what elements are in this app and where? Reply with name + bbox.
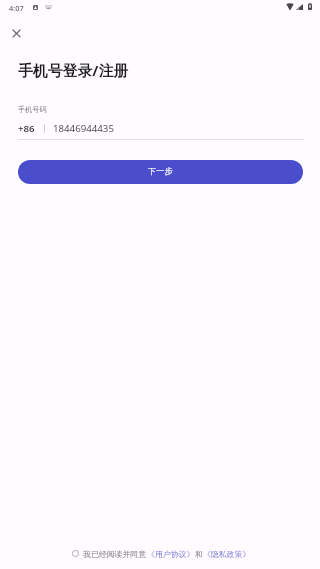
- staticText: 手机号码: [18, 105, 47, 114]
- staticText: 下一步: [148, 166, 173, 176]
- staticText: +86: [18, 122, 35, 135]
- button[interactable]: 下一步: [18, 160, 303, 184]
- staticText: 和: [195, 549, 203, 559]
- button[interactable]: 《用户协议》: [147, 549, 195, 559]
- staticText: 手机号登录/注册: [18, 60, 129, 79]
- button[interactable]: Agree to terms: [70, 548, 81, 559]
- button[interactable]: Close: [5, 22, 28, 45]
- button[interactable]: 《隐私政策》: [203, 549, 251, 559]
- staticText: 18446944435: [53, 122, 114, 135]
- staticText: 我已经阅读并同意: [83, 549, 147, 559]
- staticText: 4:07: [9, 3, 24, 13]
